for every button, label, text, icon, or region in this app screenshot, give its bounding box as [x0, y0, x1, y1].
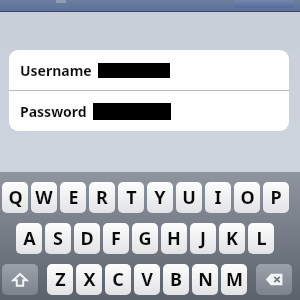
button[interactable]: N: [192, 264, 218, 295]
button[interactable]: I: [205, 182, 231, 213]
button[interactable]: Shift: [2, 264, 38, 295]
staticText: M: [226, 267, 243, 292]
staticText: T: [126, 185, 137, 210]
button[interactable]: X: [76, 264, 102, 295]
staticText: E: [68, 185, 79, 210]
staticText: W: [35, 185, 53, 210]
staticText: D: [80, 226, 94, 251]
staticText: Z: [55, 267, 66, 292]
button[interactable]: B: [163, 264, 189, 295]
button[interactable]: Username: [9, 50, 289, 90]
button[interactable]: Q: [2, 182, 28, 213]
button[interactable]: A: [16, 223, 42, 254]
button[interactable]: P: [263, 182, 289, 213]
button[interactable]: Password: [9, 91, 289, 131]
staticText: B: [170, 267, 182, 292]
button[interactable]: C: [105, 264, 131, 295]
button[interactable]: W: [31, 182, 57, 213]
button[interactable]: F: [103, 223, 129, 254]
button[interactable]: M: [221, 264, 247, 295]
staticText: H: [167, 226, 181, 251]
button[interactable]: O: [234, 182, 260, 213]
button[interactable]: S: [45, 223, 71, 254]
staticText: R: [96, 185, 108, 210]
staticText: Username: [20, 61, 92, 80]
button[interactable]: Done: [234, 0, 294, 8]
staticText: U: [182, 185, 196, 210]
button[interactable]: T: [118, 182, 144, 213]
button[interactable]: D: [74, 223, 100, 254]
staticText: J: [200, 226, 206, 251]
staticText: N: [198, 267, 213, 292]
button[interactable]: Backspace: [256, 264, 292, 295]
button[interactable]: E: [60, 182, 86, 213]
button[interactable]: U: [176, 182, 202, 213]
staticText: X: [83, 267, 96, 292]
button[interactable]: R: [89, 182, 115, 213]
button[interactable]: Z: [47, 264, 73, 295]
staticText: L: [256, 226, 267, 251]
staticText: Q: [8, 185, 23, 210]
staticText: Password: [20, 102, 87, 121]
button[interactable]: K: [219, 223, 245, 254]
staticText: P: [270, 185, 282, 210]
staticText: C: [112, 267, 124, 292]
staticText: K: [226, 226, 238, 251]
staticText: A: [23, 226, 36, 251]
staticText: G: [138, 226, 152, 251]
button[interactable]: J: [190, 223, 216, 254]
staticText: V: [141, 267, 153, 292]
button[interactable]: G: [132, 223, 158, 254]
button[interactable]: Y: [147, 182, 173, 213]
button[interactable]: V: [134, 264, 160, 295]
button[interactable]: L: [248, 223, 274, 254]
staticText: I: [214, 185, 222, 210]
staticText: Y: [154, 185, 166, 210]
button[interactable]: H: [161, 223, 187, 254]
staticText: S: [53, 226, 63, 251]
staticText: F: [111, 226, 121, 251]
staticText: O: [240, 185, 255, 210]
